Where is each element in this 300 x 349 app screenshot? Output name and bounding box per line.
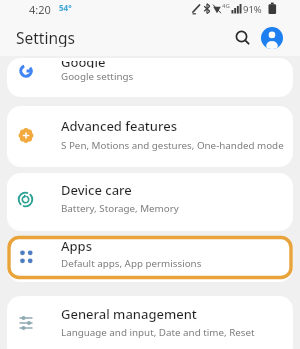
staticText: Language and input, Date and time, Reset <box>61 326 255 339</box>
button[interactable]: Apps <box>7 236 293 282</box>
button[interactable] <box>261 27 283 49</box>
staticText: 91% <box>243 3 262 16</box>
staticText: Google settings <box>61 70 134 83</box>
staticText: General management <box>61 305 197 323</box>
staticText: Battery, Storage, Memory <box>61 202 179 215</box>
staticText: Google <box>61 61 106 68</box>
button[interactable]: Device care <box>7 173 293 231</box>
staticText: Apps <box>61 237 92 255</box>
staticText: 4G <box>222 2 230 10</box>
staticText: 4:20 <box>29 2 51 17</box>
staticText: Settings <box>16 27 75 47</box>
staticText: Advanced features <box>61 117 177 135</box>
button[interactable]: General management <box>7 296 293 349</box>
staticText: Device care <box>61 181 132 199</box>
button[interactable]: Advanced features <box>7 106 293 167</box>
staticText: S Pen, Motions and gestures, One-handed … <box>61 139 284 152</box>
button[interactable] <box>230 25 256 51</box>
button[interactable]: Google <box>7 58 293 97</box>
staticText: Default apps, App permissions <box>61 257 202 270</box>
staticText: 54° <box>59 2 72 13</box>
